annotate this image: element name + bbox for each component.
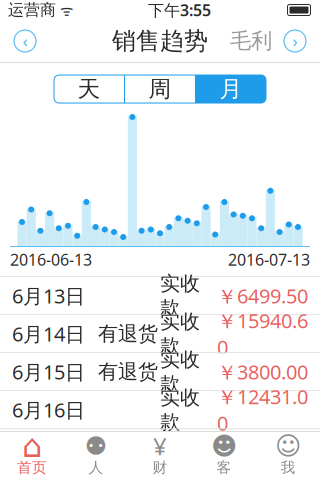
button[interactable]: ☺ — [256, 432, 320, 480]
staticText: ⚉ — [84, 432, 107, 460]
staticText: 实收款 — [160, 385, 200, 434]
staticText: 毛利 — [230, 28, 272, 54]
staticText: 有退货 — [98, 359, 158, 384]
staticText: 客 — [216, 458, 231, 476]
staticText: ‹ — [22, 30, 27, 52]
button[interactable]: ⚉ — [64, 432, 128, 480]
staticText: 实收款 — [160, 347, 200, 396]
staticText: 6月14日 — [12, 320, 85, 347]
staticText: ￥6499.50 — [217, 282, 308, 309]
staticText: 实收款 — [160, 309, 200, 358]
staticText: 实收款 — [160, 271, 200, 320]
staticText: ⌂ — [22, 428, 42, 464]
staticText: 运营商 — [8, 0, 56, 20]
button[interactable]: 6月15日 — [0, 353, 320, 391]
staticText: 下午3:55 — [148, 0, 211, 21]
button[interactable]: ⌂ — [0, 432, 64, 480]
staticText: ☺ — [275, 432, 301, 460]
staticText: 周 — [148, 75, 171, 103]
staticText: 首页 — [17, 458, 47, 476]
staticText: ᯤ — [56, 0, 73, 20]
button[interactable]: 6月14日 — [0, 315, 320, 353]
button[interactable]: ☻ — [192, 432, 256, 480]
staticText: › — [292, 30, 297, 52]
button[interactable]: 6月16日 — [0, 391, 320, 429]
staticText: 6月13日 — [12, 282, 85, 309]
staticText: ￥12431.00 — [217, 383, 308, 436]
staticText: 销售趋势 — [112, 26, 208, 56]
button[interactable]: 月 — [196, 75, 266, 103]
staticText: 6月15日 — [12, 358, 85, 385]
staticText: 有退货 — [98, 321, 158, 346]
button[interactable]: 毛利 — [224, 24, 278, 58]
staticText: ☻ — [211, 432, 237, 460]
staticText: 月 — [219, 75, 242, 103]
staticText: 2016-06-13 — [10, 249, 92, 270]
staticText: 人 — [88, 458, 103, 476]
staticText: 6月16日 — [12, 396, 85, 423]
staticText: 2016-07-13 — [228, 249, 310, 270]
button[interactable]: ¥ — [128, 432, 192, 480]
staticText: 天 — [77, 75, 100, 103]
staticText: 财 — [152, 458, 167, 476]
button[interactable]: 6月13日 — [0, 277, 320, 315]
button[interactable]: 周 — [125, 75, 195, 103]
staticText: ¥ — [153, 430, 167, 462]
staticText: 我 — [280, 458, 295, 476]
staticText: ￥3800.00 — [217, 358, 308, 385]
button[interactable]: 天 — [54, 75, 124, 103]
button[interactable]: 下一页 — [278, 24, 312, 58]
button[interactable]: 上一页 — [8, 24, 42, 58]
staticText: ￥15940.60 — [217, 307, 308, 360]
